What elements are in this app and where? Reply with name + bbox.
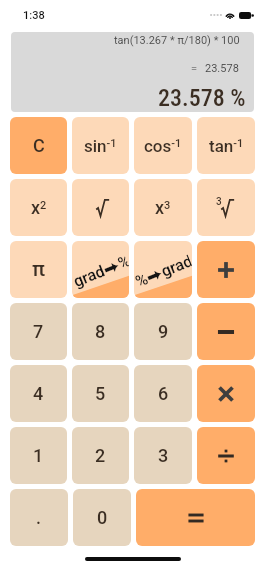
button[interactable]: Square root <box>72 179 129 236</box>
staticText: 0 <box>97 507 108 528</box>
button[interactable]: C <box>10 117 67 174</box>
button[interactable]: 1 <box>10 427 67 484</box>
staticText: 9 <box>158 321 169 342</box>
staticText: x3 <box>155 197 171 218</box>
button[interactable]: 8 <box>72 303 129 360</box>
button[interactable]: x2 <box>10 179 67 236</box>
staticText: π <box>32 257 46 282</box>
button[interactable]: Cube root <box>197 179 255 236</box>
staticText: x2 <box>31 197 47 218</box>
button[interactable]: 6 <box>134 365 192 422</box>
staticText: C <box>33 135 45 156</box>
button[interactable]: grad⮕% <box>72 241 129 298</box>
staticText: 7 <box>33 321 44 342</box>
staticText: . <box>36 507 42 528</box>
staticText: 3 <box>216 196 222 208</box>
button[interactable]: Equals <box>136 489 255 546</box>
button[interactable]: 5 <box>72 365 129 422</box>
staticText: 6 <box>158 383 169 404</box>
button[interactable]: 2 <box>72 427 129 484</box>
staticText: 23.578 % <box>158 84 246 112</box>
staticText: 5 <box>95 383 106 404</box>
staticText: cos-1 <box>144 136 182 156</box>
button[interactable]: π <box>10 241 67 298</box>
button[interactable]: cos-1 <box>134 117 192 174</box>
staticText: 23.578 <box>205 62 239 75</box>
button[interactable]: Multiply <box>197 365 255 422</box>
staticText: grad⮕% <box>72 252 129 291</box>
button[interactable]: 4 <box>10 365 67 422</box>
staticText: tan(13.267 * π/180) * 100 <box>114 34 240 47</box>
staticText: 8 <box>95 321 106 342</box>
staticText: 2 <box>95 445 106 466</box>
staticText: tan-1 <box>209 136 244 156</box>
staticText: = <box>191 62 198 75</box>
button[interactable]: 3 <box>134 427 192 484</box>
staticText: %⮕grad <box>134 252 192 291</box>
button[interactable]: sin-1 <box>72 117 129 174</box>
button[interactable]: Plus <box>197 241 255 298</box>
staticText: sin-1 <box>84 136 117 156</box>
button[interactable]: 9 <box>134 303 192 360</box>
button[interactable]: x3 <box>134 179 192 236</box>
staticText: 3 <box>158 445 169 466</box>
button[interactable]: . <box>10 489 68 546</box>
button[interactable]: 0 <box>73 489 131 546</box>
staticText: 4 <box>33 383 44 404</box>
button[interactable]: Minus <box>197 303 255 360</box>
staticText: 1 <box>33 445 44 466</box>
button[interactable]: 7 <box>10 303 67 360</box>
button[interactable]: Divide <box>197 427 255 484</box>
button[interactable]: tan-1 <box>197 117 255 174</box>
button[interactable]: %⮕grad <box>134 241 192 298</box>
staticText: 1:38 <box>23 9 45 22</box>
